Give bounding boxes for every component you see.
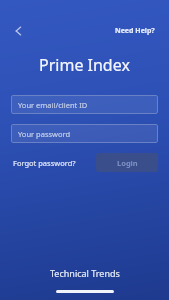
staticText: Your password: [18, 129, 71, 139]
staticText: Prime Index: [39, 54, 130, 76]
button[interactable]: Need Help?: [111, 23, 159, 39]
staticText: Login: [117, 158, 138, 168]
button[interactable]: Your email/client ID: [11, 95, 158, 114]
button[interactable]: Login: [96, 153, 158, 172]
button[interactable]: Forgot password?: [11, 154, 78, 172]
staticText: Your email/client ID: [18, 100, 88, 110]
staticText: Technical Trends: [50, 267, 120, 279]
button[interactable]: Your password: [11, 124, 158, 143]
staticText: Need Help?: [115, 26, 155, 36]
staticText: Forgot password?: [13, 158, 76, 168]
button[interactable]: Back: [6, 18, 32, 44]
